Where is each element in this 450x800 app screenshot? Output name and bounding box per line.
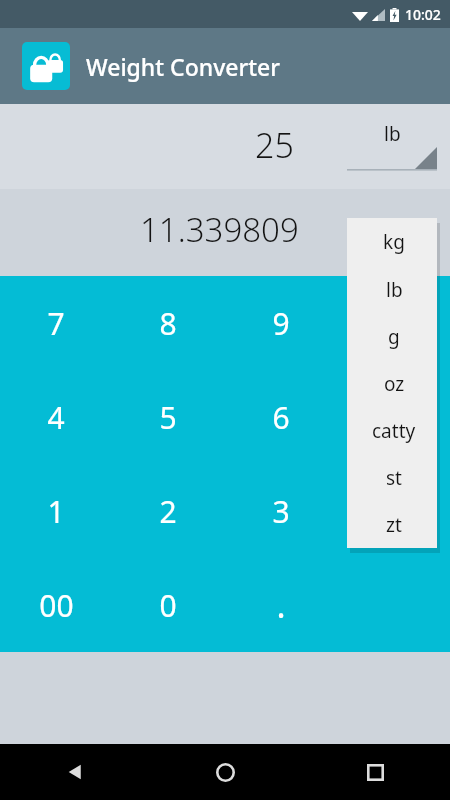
- staticText: C: [384, 491, 403, 532]
- button[interactable]: 25: [255, 122, 294, 168]
- button[interactable]: oz: [347, 360, 437, 407]
- button[interactable]: zt: [347, 501, 437, 548]
- button[interactable]: 7: [0, 276, 112, 370]
- staticText: 5: [159, 397, 177, 438]
- staticText: 00: [39, 585, 74, 626]
- button[interactable]: lb: [347, 266, 437, 313]
- button[interactable]: .: [224, 558, 337, 652]
- button[interactable]: 00: [0, 558, 112, 652]
- button[interactable]: 8: [112, 276, 224, 370]
- staticText: 8: [159, 303, 177, 344]
- button[interactable]: 4: [0, 370, 112, 464]
- button[interactable]: Recent apps: [300, 744, 450, 800]
- button[interactable]: g: [347, 313, 437, 360]
- button[interactable]: 11.339809: [140, 207, 299, 252]
- staticText: 9: [272, 303, 290, 344]
- button[interactable]: Home: [150, 744, 300, 800]
- staticText: st: [386, 465, 402, 491]
- staticText: kg: [383, 229, 405, 255]
- button[interactable]: 1: [0, 464, 112, 558]
- staticText: 10:02: [405, 5, 441, 24]
- staticText: 7: [47, 303, 65, 344]
- button[interactable]: catty: [347, 407, 437, 454]
- button[interactable]: 2: [112, 464, 224, 558]
- button[interactable]: Back: [0, 744, 150, 800]
- button[interactable]: App icon: [22, 42, 70, 90]
- staticText: Weight Converter: [86, 51, 280, 82]
- staticText: g: [388, 324, 400, 350]
- button[interactable]: 3: [224, 464, 337, 558]
- button[interactable]: 0: [112, 558, 224, 652]
- staticText: zt: [386, 512, 402, 538]
- button[interactable]: kg: [347, 218, 437, 266]
- staticText: catty: [372, 418, 416, 444]
- button[interactable]: 9: [224, 276, 337, 370]
- staticText: 6: [272, 397, 290, 438]
- staticText: 3: [272, 491, 290, 532]
- staticText: 2: [159, 491, 177, 532]
- staticText: 0: [159, 585, 177, 626]
- staticText: lb: [384, 121, 401, 147]
- button[interactable]: [337, 370, 450, 464]
- button[interactable]: 5: [112, 370, 224, 464]
- staticText: 4: [47, 397, 65, 438]
- staticText: lb: [386, 277, 403, 303]
- staticText: .: [276, 582, 286, 628]
- button[interactable]: st: [347, 454, 437, 501]
- button[interactable]: lb: [347, 117, 437, 175]
- staticText: 1: [47, 491, 65, 532]
- button[interactable]: 6: [224, 370, 337, 464]
- button[interactable]: [337, 276, 450, 370]
- button[interactable]: C: [337, 464, 450, 558]
- staticText: oz: [384, 371, 405, 397]
